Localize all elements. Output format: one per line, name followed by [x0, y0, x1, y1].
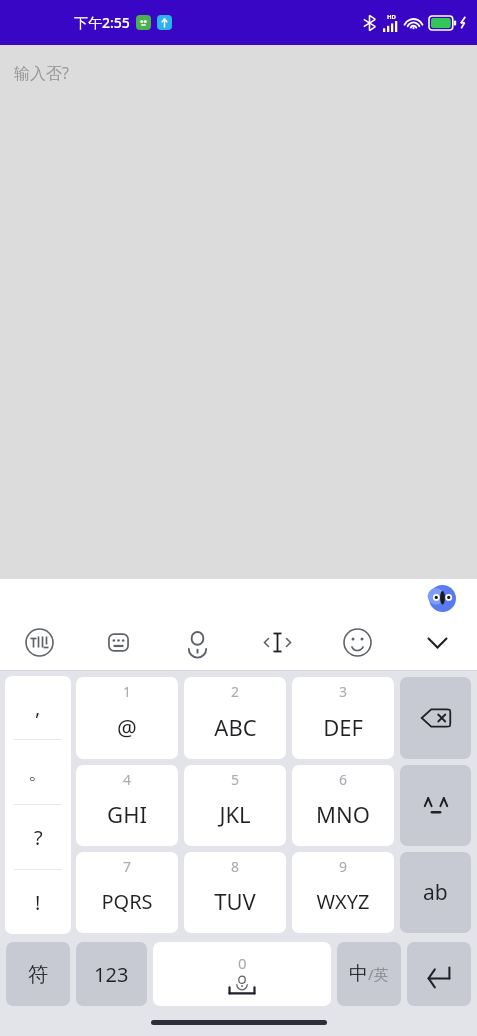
staticText: 2 — [231, 682, 240, 701]
button[interactable]: 8 — [184, 852, 286, 933]
button[interactable]: 7 — [76, 852, 178, 933]
button[interactable]: Assistant — [429, 585, 456, 612]
staticText: 4 — [123, 770, 132, 789]
button[interactable]: 0 — [153, 942, 331, 1006]
staticText: ! — [35, 889, 41, 916]
staticText: 。 — [28, 760, 48, 785]
staticText: 中 — [349, 962, 368, 986]
button[interactable]: Delete — [400, 677, 471, 759]
button[interactable]: Hide keyboard — [397, 620, 477, 664]
staticText: 5 — [231, 770, 240, 789]
button[interactable]: Voice input — [158, 620, 237, 664]
staticText: 6 — [339, 770, 348, 789]
staticText: 1 — [123, 682, 132, 701]
button[interactable]: , — [5, 676, 71, 934]
button[interactable] — [407, 942, 471, 1006]
button[interactable]: 1 — [76, 677, 178, 759]
button[interactable]: 中 — [337, 942, 401, 1006]
staticText: 符 — [28, 962, 48, 987]
staticText: WXYZ — [316, 888, 370, 915]
staticText: 123 — [94, 961, 129, 988]
button[interactable]: 5 — [184, 765, 286, 846]
staticText: 输入否? — [14, 62, 69, 84]
staticText: JKL — [219, 799, 251, 829]
button[interactable]: 123 — [76, 942, 147, 1006]
button[interactable]: 符 — [6, 942, 70, 1006]
button[interactable]: 6 — [292, 765, 394, 846]
staticText: GHI — [107, 799, 147, 829]
button[interactable]: Emoji — [317, 620, 397, 664]
staticText: HD — [387, 13, 396, 21]
staticText: 下午2:55 — [74, 13, 130, 32]
button[interactable]: 4 — [76, 765, 178, 846]
staticText: 7 — [123, 857, 132, 876]
button[interactable]: Keyboard layout — [79, 620, 158, 664]
staticText: 0 — [238, 953, 247, 973]
staticText: ABC — [214, 712, 257, 742]
button[interactable]: 2 — [184, 677, 286, 759]
staticText: , — [35, 694, 41, 721]
button[interactable]: Emoticon — [400, 765, 471, 846]
staticText: ab — [423, 878, 448, 907]
staticText: PQRS — [101, 888, 153, 915]
staticText: DEF — [323, 712, 363, 742]
staticText: 8 — [231, 857, 240, 876]
button[interactable]: ab — [400, 852, 471, 933]
staticText: 3 — [339, 682, 348, 701]
staticText: 9 — [339, 857, 348, 876]
staticText: /英 — [368, 964, 389, 984]
button[interactable]: IME settings — [0, 620, 79, 664]
staticText: @ — [117, 712, 137, 742]
staticText: ? — [34, 824, 43, 851]
staticText: TUV — [214, 886, 256, 916]
button[interactable]: 3 — [292, 677, 394, 759]
staticText: MNO — [316, 799, 370, 829]
button[interactable]: Move cursor — [237, 620, 317, 664]
button[interactable]: 9 — [292, 852, 394, 933]
